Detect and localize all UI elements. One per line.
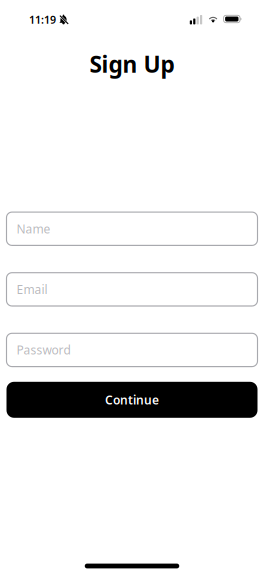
button[interactable]: Password bbox=[6, 333, 257, 367]
staticText: Password bbox=[16, 342, 70, 358]
button[interactable]: Email bbox=[6, 273, 257, 306]
button[interactable]: Continue bbox=[6, 382, 257, 418]
staticText: Email bbox=[16, 281, 47, 297]
textField[interactable]: Name bbox=[6, 212, 257, 245]
button[interactable]: Name bbox=[6, 212, 257, 245]
staticText: 11:19 bbox=[29, 12, 56, 27]
staticText: Name bbox=[16, 221, 50, 237]
staticText: Sign Up bbox=[89, 49, 174, 79]
staticText: Continue bbox=[105, 392, 159, 408]
secureTextField[interactable]: Password bbox=[6, 333, 257, 367]
textField[interactable]: Email bbox=[6, 273, 257, 306]
